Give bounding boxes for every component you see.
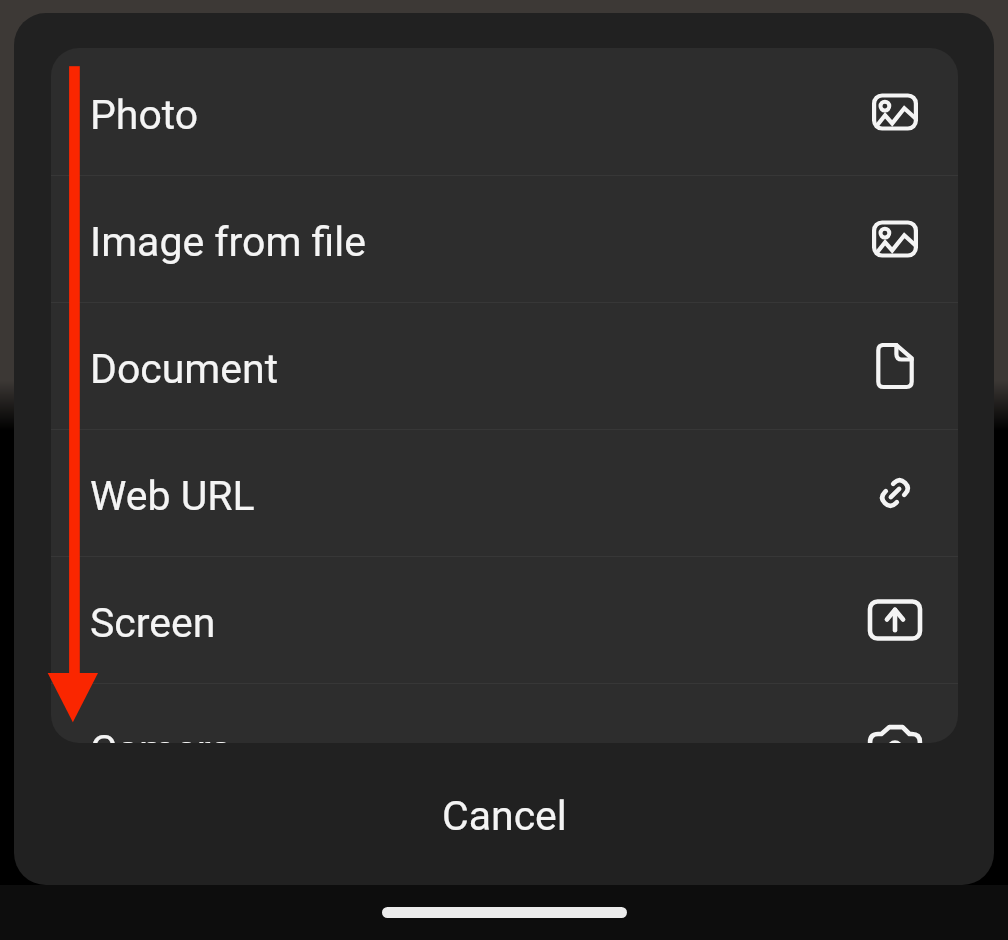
other: Camera — [865, 719, 925, 743]
button[interactable]: Camera — [51, 683, 958, 743]
other: Photo — [865, 211, 925, 267]
staticText: Cancel — [442, 792, 567, 840]
button[interactable]: Web URL — [51, 429, 958, 556]
staticText: Document — [90, 345, 279, 393]
staticText: Web URL — [90, 472, 255, 520]
staticText: Image from file — [90, 218, 367, 266]
button[interactable]: Document — [51, 302, 958, 429]
other: Screen — [865, 592, 925, 648]
button[interactable]: Screen — [51, 556, 958, 683]
button[interactable]: Photo — [51, 48, 958, 175]
staticText: Photo — [90, 91, 199, 139]
button[interactable]: Image from file — [51, 175, 958, 302]
other: Document — [865, 338, 925, 394]
other: Web URL — [865, 465, 925, 521]
staticText: Screen — [90, 599, 216, 647]
staticText: Camera — [90, 726, 233, 743]
button[interactable]: Cancel — [14, 743, 994, 885]
other: Photo — [865, 84, 925, 140]
